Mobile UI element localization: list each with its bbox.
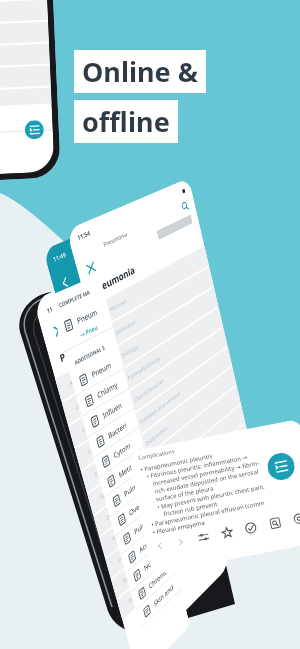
staticText: COMPLETE MA [58,289,91,309]
staticText: Complications [156,461,183,489]
button[interactable]: Overvie [110,484,158,537]
staticText: Pathophysiology [87,428,121,457]
button[interactable]: Abstract [88,246,209,331]
staticText: Pulmo [133,515,151,537]
staticText: Chlamy [96,379,118,401]
button[interactable]: Mark learned [244,521,258,535]
staticText: offline [82,103,170,140]
staticText: Pathophysiology [127,354,160,382]
staticText: Overvie [128,495,149,518]
button[interactable]: Skin and [136,573,181,628]
staticText: Pneu [58,342,81,365]
staticText: • Parapneumonic pleural effusion (comm [151,499,266,529]
button[interactable]: Complications [138,404,245,509]
staticText: Etiology [121,342,139,360]
button[interactable]: Bacteri [87,408,139,458]
staticText: Prognosis [123,562,142,585]
button[interactable]: Subtypes and variants [120,347,232,445]
staticText: Bacteri [107,420,128,441]
button[interactable]: Search in page [268,516,282,530]
staticText: Abstract [68,370,88,388]
staticText: Abstract [108,296,128,314]
button[interactable]: Settings [292,512,300,526]
staticText: rich exudate deposited on the serosal [144,467,260,497]
staticText: Pneum [76,306,99,327]
staticText: Definition [75,392,97,411]
staticText: 11:49 [52,250,67,264]
staticText: 11:51 [46,301,60,315]
button[interactable]: Pulmo [115,502,163,555]
staticText: Treatment [111,521,132,543]
staticText: Subtypes and variants [99,463,142,501]
button[interactable]: Table of contents [24,120,44,140]
staticText: Pneumonia [90,262,136,298]
staticText: • Pleural empyema [152,519,206,537]
button[interactable]: Prevention [150,441,253,550]
staticText: Online & [82,53,198,90]
staticText: Nosoco [143,549,163,574]
staticText: Pneumonia [102,204,183,249]
button[interactable]: Metal f [99,447,149,498]
staticText: Etiology [81,416,100,434]
button[interactable]: Chlamy [76,369,129,417]
button[interactable]: Cytom [93,428,144,478]
button[interactable]: Definition [95,267,214,355]
staticText: friction rub present [149,500,218,521]
staticText: Diagnostics [105,498,129,522]
button[interactable]: Favourite [220,525,234,540]
staticText: Complications [138,447,175,461]
staticText: Acute [138,535,154,555]
button[interactable]: Clinical features [114,327,228,423]
staticText: Cytom [112,440,131,461]
staticText: increased vessel permeability → fibrin- [143,459,260,490]
staticText: • May present with pleuritic chest pain, [147,482,266,513]
button[interactable]: Prognosis [144,423,249,529]
button[interactable]: Acute [120,520,168,574]
staticText: Prevention [167,506,187,530]
staticText: Complications [117,536,145,564]
button[interactable]: Treatment [132,385,241,488]
staticText: ADDITIONAL S [74,344,106,367]
button[interactable]: Search [181,200,190,213]
button[interactable]: Pulmon [104,465,154,517]
staticText: • Parapneumonic pleuritis [140,452,213,474]
button[interactable]: Pathophysiology [108,307,223,401]
staticText: Pulmon [123,476,144,500]
staticText: Diagnostics [145,424,168,447]
staticText: Treatment [150,446,171,468]
button[interactable]: Table of contents [265,451,297,482]
staticText: → Pneu [79,323,99,340]
staticText: Definition [115,318,136,337]
staticText: surface of the pleura [146,484,214,505]
staticText: Influen [102,400,123,421]
staticText: Prognosis [162,487,181,509]
staticText: Pneum [90,359,112,380]
staticText: Chronic [148,567,168,591]
staticText: Skin and [153,582,175,609]
button[interactable]: Close [85,260,97,276]
button[interactable]: Etiology [101,287,218,378]
staticText: Prevention [128,581,149,605]
button[interactable]: Chronic [131,555,177,610]
staticText: Metal f [118,458,138,480]
button[interactable]: Sort [197,530,211,544]
staticText: 11:54 [76,228,91,242]
staticText: • Fibrinous pleuritis: inflammation → [141,453,248,482]
button[interactable]: Influen [82,389,134,438]
button[interactable]: Pneum [70,349,124,396]
button[interactable]: Pneum [54,296,113,352]
staticText: Clinical features [93,450,126,479]
staticText: Clinical features [133,376,165,404]
staticText: Subtypes and variants [139,389,181,426]
button[interactable]: Diagnostics [126,366,236,467]
button[interactable]: Nosoco [125,538,172,592]
